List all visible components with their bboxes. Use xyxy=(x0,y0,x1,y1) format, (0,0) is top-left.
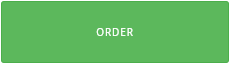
button[interactable]: ORDER xyxy=(1,1,229,63)
staticText: ORDER xyxy=(96,25,134,39)
